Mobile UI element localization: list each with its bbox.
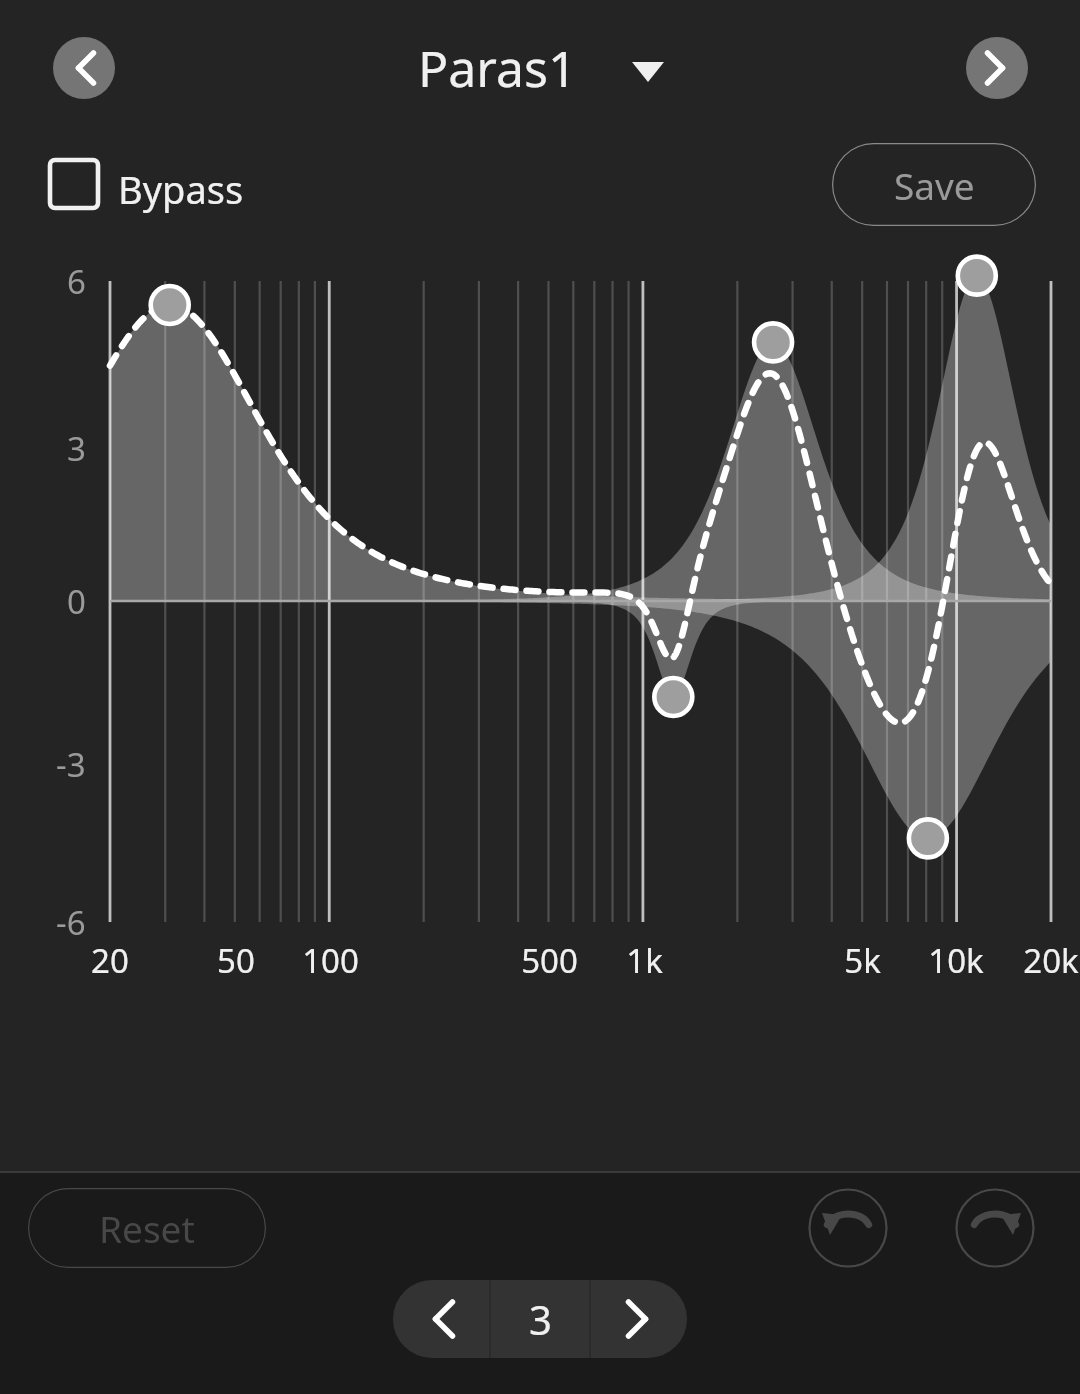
button[interactable]: Next preset <box>966 37 1028 99</box>
button[interactable]: Reset <box>28 1188 266 1268</box>
button[interactable]: Previous page <box>393 1280 490 1358</box>
button[interactable]: Undo <box>808 1188 888 1268</box>
button[interactable]: Paras1 <box>400 28 685 110</box>
staticText: 20k <box>1023 938 1079 983</box>
staticText: 10k <box>928 938 984 983</box>
button[interactable]: Previous preset <box>53 37 115 99</box>
button[interactable]: Redo <box>955 1188 1035 1268</box>
staticText: 500 <box>521 938 578 983</box>
staticText: 6 <box>67 259 86 303</box>
staticText: -6 <box>56 900 86 944</box>
staticText: 50 <box>217 938 255 983</box>
staticText: Paras1 <box>418 34 577 102</box>
staticText: Save <box>894 160 975 210</box>
staticText: -3 <box>56 742 86 786</box>
button[interactable]: Next page <box>590 1280 687 1358</box>
staticText: 0 <box>67 579 86 623</box>
staticText: 3 <box>529 1292 552 1346</box>
staticText: Bypass <box>118 163 244 215</box>
staticText: 5k <box>844 938 881 983</box>
staticText: 1k <box>626 938 663 983</box>
button[interactable]: Bypass <box>42 150 267 218</box>
button[interactable]: 3 <box>490 1280 590 1358</box>
staticText: 20 <box>91 938 129 983</box>
staticText: Reset <box>99 1203 195 1253</box>
staticText: 100 <box>302 938 359 983</box>
staticText: 3 <box>67 426 86 470</box>
button[interactable]: Save <box>832 143 1036 226</box>
